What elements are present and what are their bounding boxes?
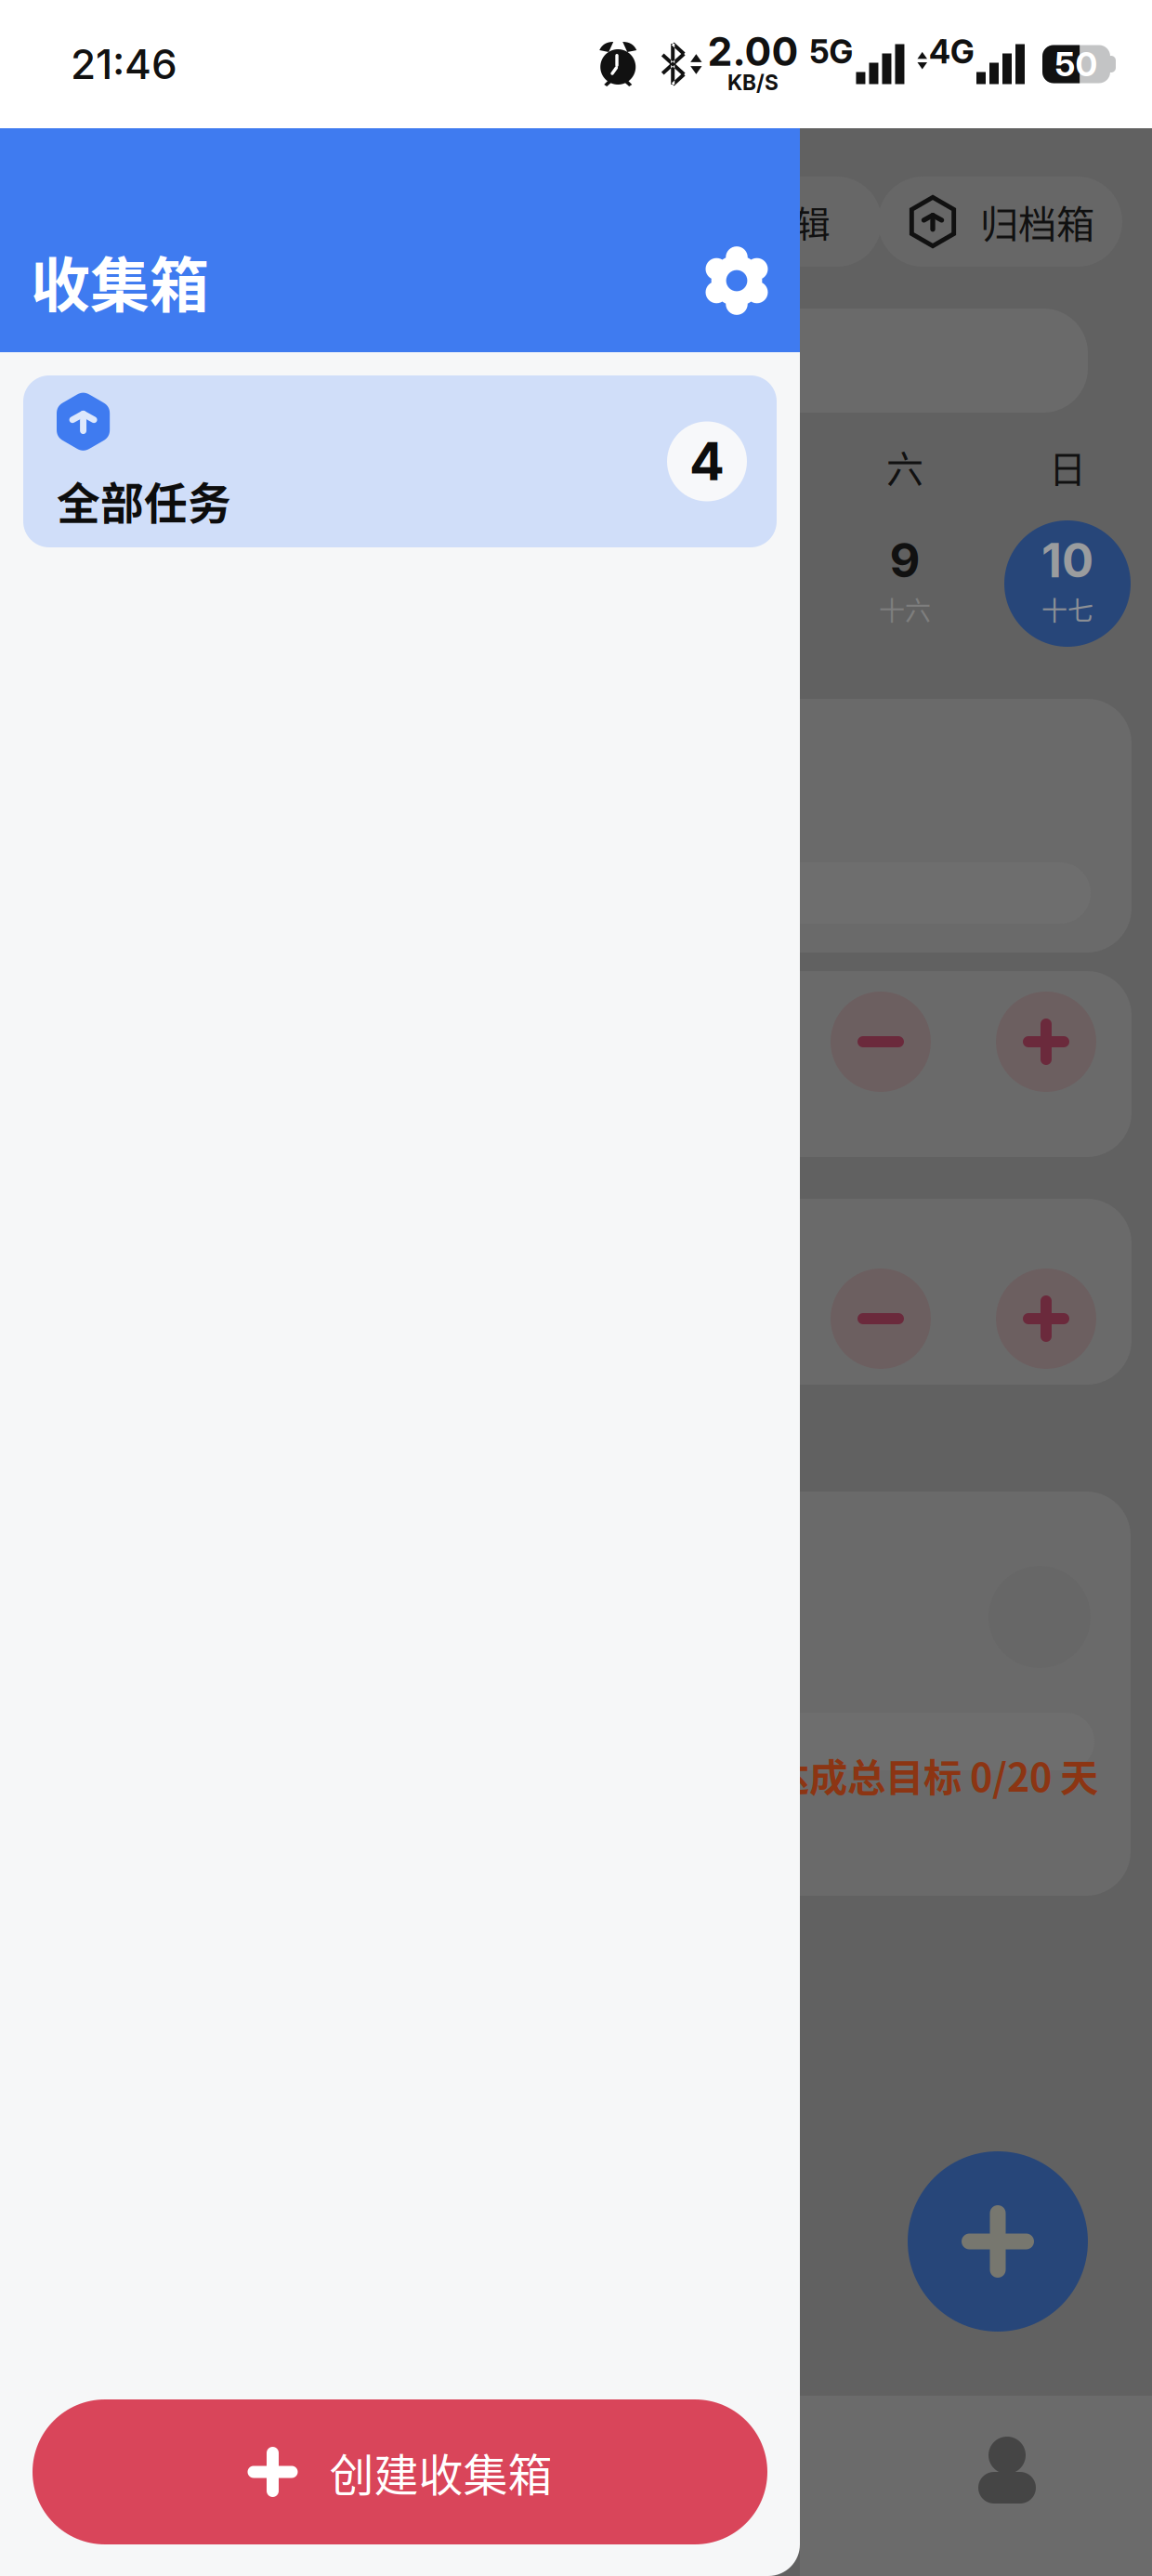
staticText: 收集箱 xyxy=(31,238,209,324)
staticText: 归档箱 xyxy=(980,194,1094,250)
button[interactable]: 创建收集箱 xyxy=(33,2399,767,2544)
staticText: 六 xyxy=(886,440,923,493)
staticText: KB/S xyxy=(727,70,779,95)
staticText: 2.00 xyxy=(707,27,799,75)
staticText: 9 xyxy=(890,532,920,589)
staticText: 4 xyxy=(689,430,725,493)
staticText: 日 xyxy=(1049,440,1086,493)
staticText: 创建收集箱 xyxy=(329,2440,552,2504)
button[interactable]: 设置 xyxy=(674,209,800,352)
staticText: 十七 xyxy=(1041,590,1093,628)
staticText: 50 xyxy=(1055,44,1098,84)
staticText: 10 xyxy=(1041,532,1093,589)
staticText: 21:46 xyxy=(71,39,177,89)
staticText: 4G xyxy=(929,32,975,71)
staticText: 十六 xyxy=(879,590,931,628)
button[interactable]: 全部任务 xyxy=(23,375,777,547)
staticText: 编辑 xyxy=(758,196,831,248)
staticText: 达成总目标 0/20 天 xyxy=(771,1747,1098,1803)
staticText: 5G xyxy=(810,32,853,71)
staticText: 全部任务 xyxy=(57,469,231,532)
